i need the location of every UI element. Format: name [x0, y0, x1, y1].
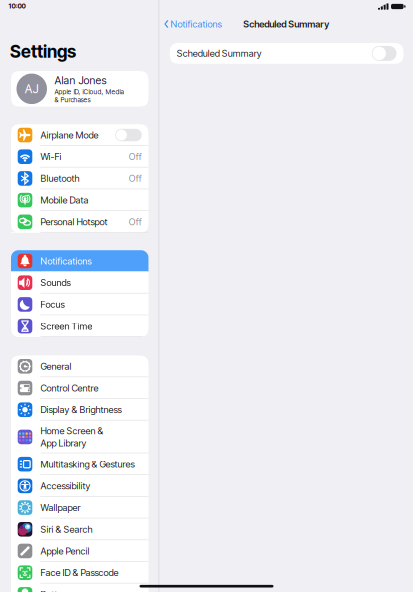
button[interactable]: Wi-Fi	[11, 146, 148, 168]
button[interactable]: Screen Time	[11, 315, 148, 337]
button[interactable]: Bluetooth	[11, 168, 148, 189]
button[interactable]: AJ	[11, 71, 148, 107]
staticText: Control Centre	[40, 382, 98, 394]
button[interactable]: Face ID & Passcode	[11, 562, 148, 583]
button[interactable]: Scheduled Summary	[170, 43, 403, 64]
staticText: Accessibility	[40, 480, 90, 491]
button[interactable]: Apple Pencil	[11, 540, 148, 562]
staticText: Alan Jones	[54, 74, 106, 87]
button[interactable]: Home Screen &	[11, 421, 148, 453]
staticText: Home Screen &	[40, 425, 103, 436]
staticText: Off	[129, 173, 142, 184]
staticText: Notifications	[40, 255, 91, 267]
button[interactable]: General	[11, 355, 148, 377]
staticText: Apple ID, iCloud, Media	[54, 88, 123, 96]
button[interactable]: Mobile Data	[11, 189, 148, 211]
button[interactable]: Airplane Mode	[11, 124, 148, 146]
staticText: Scheduled Summary	[177, 48, 262, 59]
staticText: Scheduled Summary	[243, 18, 329, 30]
button[interactable]: Multitasking & Gestures	[11, 453, 148, 475]
staticText: Notifications	[170, 18, 221, 30]
staticText: Multitasking & Gestures	[40, 458, 134, 470]
staticText: Wi-Fi	[40, 151, 61, 162]
staticText: Personal Hotspot	[40, 216, 107, 227]
button[interactable]: Display & Brightness	[11, 399, 148, 421]
staticText: Focus	[40, 299, 64, 310]
staticText: 10:00	[8, 2, 25, 10]
staticText: Face ID & Passcode	[40, 567, 118, 578]
staticText: Display & Brightness	[40, 404, 121, 415]
button[interactable]: Siri & Search	[11, 518, 148, 540]
staticText: Apple Pencil	[40, 545, 89, 557]
button[interactable]: Notifications	[11, 250, 148, 272]
staticText: & Purchases	[54, 96, 90, 104]
staticText: Off	[129, 216, 142, 227]
staticText: Settings	[10, 41, 76, 62]
button[interactable]: Sounds	[11, 272, 148, 294]
button[interactable]: Wallpaper	[11, 497, 148, 518]
staticText: Airplane Mode	[40, 129, 98, 141]
button[interactable]: Accessibility	[11, 475, 148, 497]
staticText: General	[40, 361, 71, 372]
button[interactable]: Battery	[11, 583, 148, 592]
staticText: Sounds	[40, 277, 70, 288]
button[interactable]: Personal Hotspot	[11, 211, 148, 233]
button[interactable]: Notifications	[160, 15, 225, 33]
staticText: AJ	[25, 82, 39, 96]
button[interactable]: Focus	[11, 294, 148, 315]
staticText: Siri & Search	[40, 524, 92, 535]
button[interactable]: Control Centre	[11, 377, 148, 399]
staticText: Screen Time	[40, 320, 92, 332]
staticText: Mobile Data	[40, 194, 88, 206]
staticText: Bluetooth	[40, 173, 79, 184]
staticText: Battery	[40, 589, 70, 592]
staticText: Off	[129, 151, 142, 162]
staticText: App Library	[40, 437, 86, 449]
staticText: Wallpaper	[40, 502, 80, 513]
